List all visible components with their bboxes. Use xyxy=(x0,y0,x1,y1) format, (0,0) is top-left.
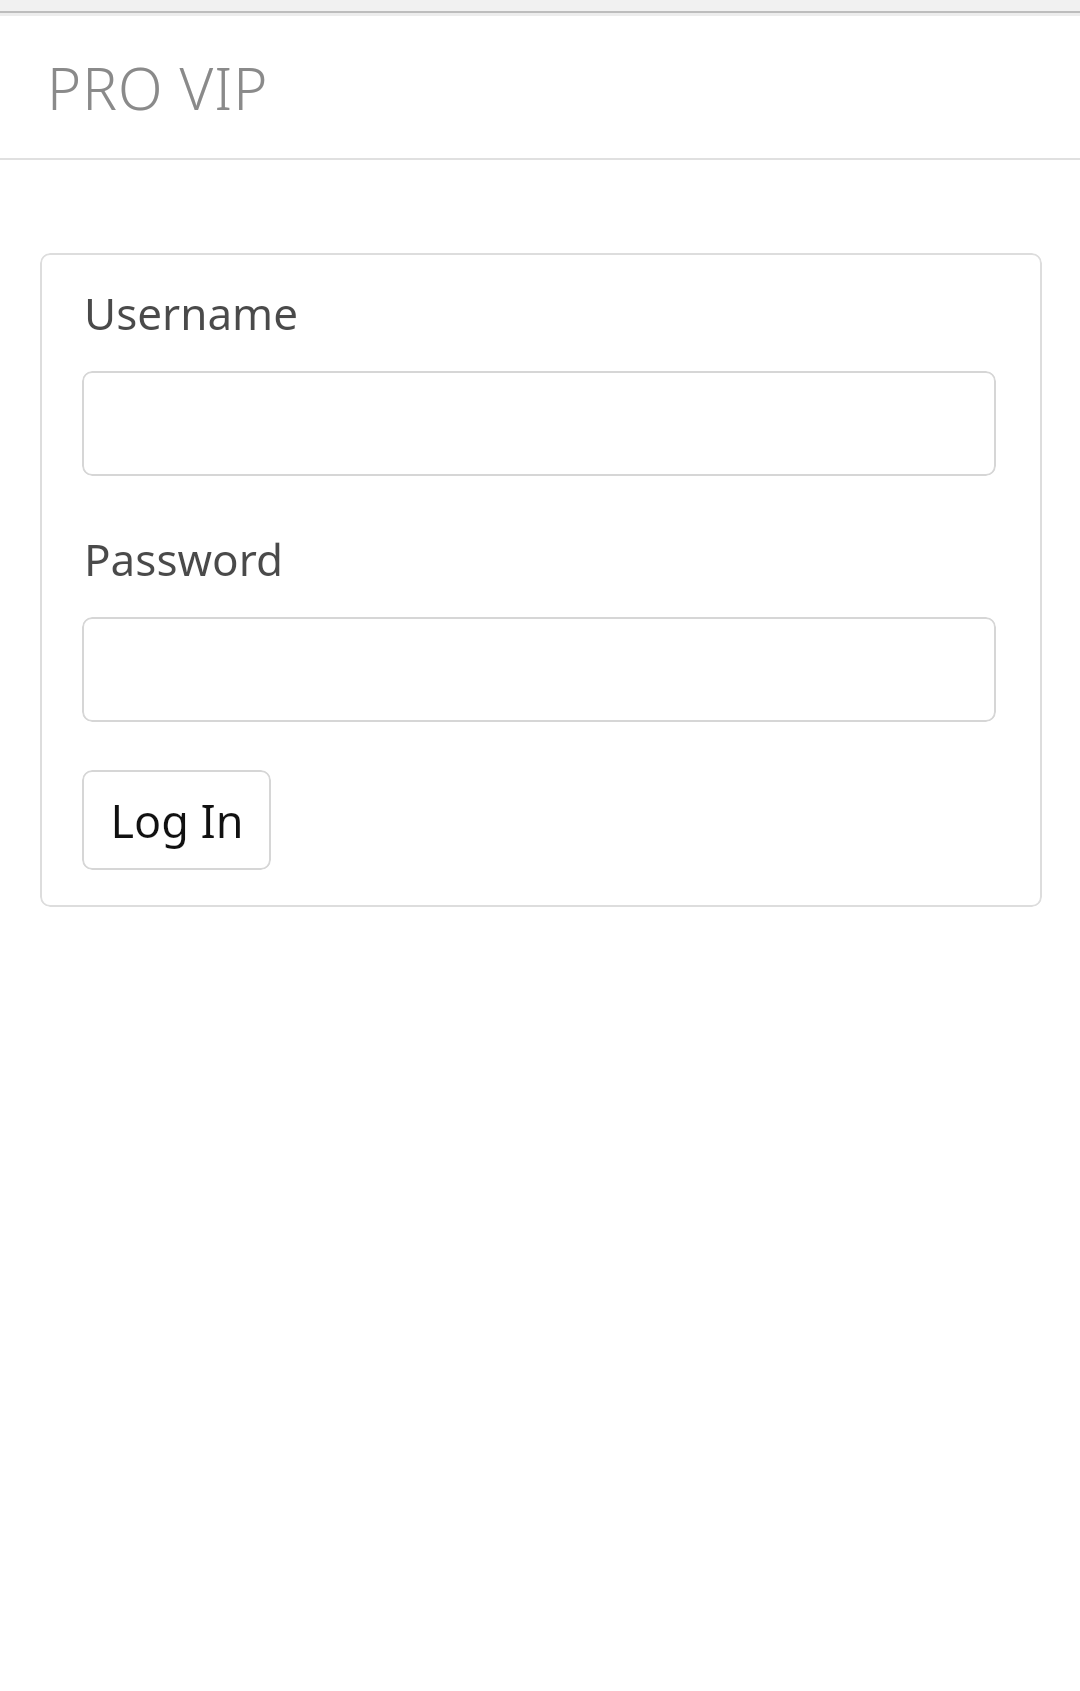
button[interactable] xyxy=(82,371,996,476)
button[interactable] xyxy=(82,617,996,722)
button[interactable]: Log In xyxy=(82,770,271,870)
staticText: Username xyxy=(84,283,299,343)
staticText: Log In xyxy=(110,790,244,851)
staticText: Password xyxy=(84,529,284,589)
staticText: PRO VIP xyxy=(47,48,269,127)
